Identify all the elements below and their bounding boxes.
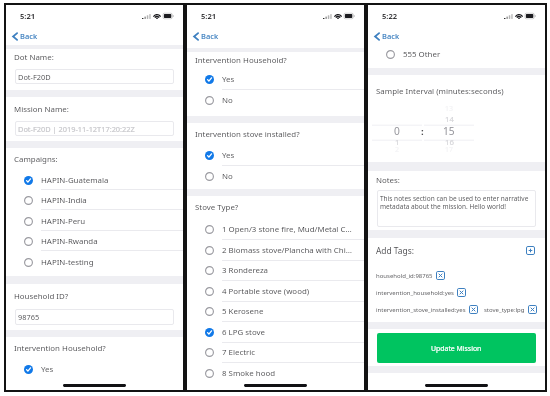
staticText: 6 LPG stove <box>222 327 360 338</box>
button[interactable]: HAPIN-Guatemala <box>6 170 183 190</box>
button[interactable]: 8 Smoke hood <box>187 363 364 384</box>
staticText: Dot Name: <box>14 52 54 63</box>
staticText: Yes <box>222 150 360 161</box>
button[interactable]: HAPIN-Rwanda <box>6 231 183 251</box>
staticText: Intervention stove installed? <box>195 129 300 140</box>
button[interactable]: 2 Biomass stove/Plancha with Chi… <box>187 240 364 261</box>
staticText: 1 Open/3 stone fire, Mud/Metal C… <box>222 224 360 235</box>
staticText: 1 <box>395 137 400 148</box>
button[interactable]: Number picker <box>372 107 422 155</box>
staticText: This notes section can be used to enter … <box>380 194 534 211</box>
staticText: HAPIN-Peru <box>41 216 179 227</box>
staticText: Update Mission <box>431 344 482 353</box>
button[interactable]: Number picker <box>424 107 474 155</box>
button[interactable]: Dot-F20D <box>15 69 174 84</box>
staticText: 5:21 <box>201 11 217 21</box>
button[interactable]: Back <box>368 27 406 45</box>
staticText: Dot-F20D <box>18 72 51 82</box>
staticText: 5:21 <box>20 11 36 21</box>
button[interactable]: Remove household_id:98765 <box>436 271 445 280</box>
staticText: 7 Electric <box>222 347 360 358</box>
staticText: No <box>222 171 360 182</box>
staticText: Back <box>20 31 38 41</box>
button[interactable]: HAPIN-India <box>6 190 183 210</box>
staticText: Dot-F20D | 2019-11-12T17:20:22Z <box>18 124 135 134</box>
staticText: 98765 <box>18 312 40 322</box>
staticText: Yes <box>222 74 360 85</box>
button[interactable]: 7 Electric <box>187 342 364 363</box>
staticText: Intervention Household? <box>195 55 287 66</box>
staticText: 14 <box>445 114 454 125</box>
button[interactable]: 6 LPG stove <box>187 322 364 343</box>
staticText: No <box>222 95 360 106</box>
staticText: : <box>421 125 424 138</box>
button[interactable]: Update Mission <box>377 333 536 363</box>
staticText: 3 Rondereza <box>222 265 360 276</box>
staticText: Yes <box>41 364 179 375</box>
staticText: Add Tags: <box>376 245 526 256</box>
button[interactable]: HAPIN-testing <box>6 252 183 272</box>
button[interactable]: Yes <box>187 145 364 166</box>
staticText: Intervention Household? <box>14 343 106 354</box>
staticText: 13 <box>445 104 454 114</box>
button[interactable]: 1 Open/3 stone fire, Mud/Metal C… <box>187 219 364 240</box>
button[interactable]: Remove intervention_household:yes <box>457 288 466 297</box>
staticText: stove_type:lpg <box>484 306 525 314</box>
button[interactable]: 3 Rondereza <box>187 260 364 281</box>
staticText: Back <box>201 31 219 41</box>
staticText: 4 Portable stove (wood) <box>222 286 360 297</box>
button[interactable]: Dot-F20D | 2019-11-12T17:20:22Z <box>15 121 174 136</box>
staticText: 17 <box>445 145 454 155</box>
button[interactable]: Remove intervention_stove_installed:yes <box>469 305 478 314</box>
staticText: 16 <box>445 137 454 148</box>
staticText: Mission Name: <box>14 104 69 115</box>
staticText: 555 Other <box>403 49 541 60</box>
staticText: 5 Kerosene <box>222 306 360 317</box>
button[interactable]: 98765 <box>15 309 174 325</box>
button[interactable]: Remove stove_type:lpg <box>528 305 537 314</box>
staticText: 15 <box>443 124 455 136</box>
staticText: HAPIN-India <box>41 195 179 206</box>
button[interactable]: This notes section can be used to enter … <box>377 190 536 227</box>
staticText: 0 <box>394 124 400 136</box>
staticText: 8 Smoke hood <box>222 368 360 379</box>
button[interactable]: Yes <box>187 69 364 90</box>
staticText: Household ID? <box>14 291 69 302</box>
staticText: HAPIN-Rwanda <box>41 236 179 247</box>
staticText: 5:22 <box>382 11 398 21</box>
staticText: Sample Interval (minutes:seconds) <box>376 86 504 97</box>
staticText: intervention_household:yes <box>376 289 454 297</box>
button[interactable]: No <box>187 90 364 111</box>
button[interactable]: HAPIN-Peru <box>6 211 183 231</box>
button[interactable]: 4 Portable stove (wood) <box>187 281 364 302</box>
staticText: household_id:98765 <box>376 272 433 280</box>
staticText: HAPIN-testing <box>41 257 179 268</box>
staticText: Campaigns: <box>14 154 58 165</box>
staticText: 2 <box>395 145 400 155</box>
button[interactable]: 555 Other <box>368 45 545 63</box>
button[interactable]: Add tag <box>526 246 535 255</box>
staticText: 2 Biomass stove/Plancha with Chi… <box>222 245 360 256</box>
staticText: intervention_stove_installed:yes <box>376 306 466 314</box>
button[interactable]: 5 Kerosene <box>187 301 364 322</box>
staticText: Stove Type? <box>195 202 239 213</box>
staticText: Back <box>382 31 400 41</box>
button[interactable]: No <box>187 166 364 187</box>
button[interactable]: Yes <box>6 359 183 379</box>
button[interactable]: Back <box>187 27 225 45</box>
staticText: Notes: <box>376 175 400 186</box>
staticText: HAPIN-Guatemala <box>41 175 179 186</box>
button[interactable]: Back <box>6 27 44 45</box>
